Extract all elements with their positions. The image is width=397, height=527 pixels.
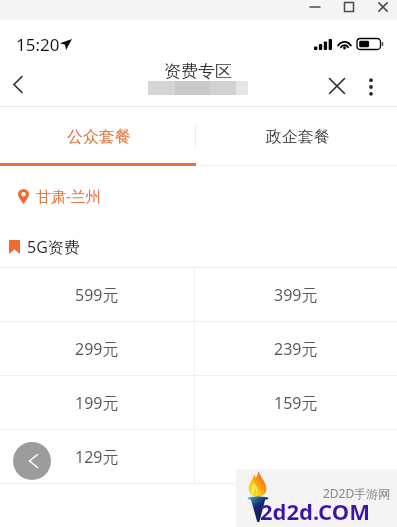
staticText: 5G资费 [27, 236, 80, 258]
button[interactable]: Back [13, 442, 51, 480]
button[interactable]: 公众套餐 [0, 107, 198, 166]
button[interactable] [195, 430, 397, 483]
staticText: 239元 [274, 338, 318, 360]
button[interactable]: Maximize [337, 0, 361, 20]
button[interactable]: 199元 [0, 376, 194, 429]
staticText: 199元 [75, 392, 119, 414]
button[interactable]: Close [320, 69, 354, 103]
button[interactable]: 159元 [195, 376, 397, 429]
staticText: 599元 [75, 284, 119, 306]
button[interactable]: 399元 [195, 268, 397, 321]
button[interactable]: 299元 [0, 322, 194, 375]
staticText: 政企套餐 [266, 127, 330, 147]
button[interactable]: Close window [371, 0, 395, 20]
staticText: 399元 [274, 284, 318, 306]
staticText: 甘肃-兰州 [36, 186, 101, 206]
staticText: 2D2D手游网 [323, 485, 391, 501]
staticText: 299元 [75, 338, 119, 360]
button[interactable]: More options [354, 70, 388, 104]
staticText: 公众套餐 [67, 127, 131, 147]
button[interactable]: 129元 [0, 430, 194, 483]
button[interactable]: 政企套餐 [198, 107, 397, 166]
button[interactable]: 599元 [0, 268, 194, 321]
button[interactable]: Back [2, 58, 36, 107]
staticText: 15:20 [16, 33, 60, 56]
button[interactable]: 甘肃-兰州 [18, 170, 397, 222]
button[interactable]: Minimize [303, 0, 327, 20]
staticText: 129元 [75, 446, 119, 468]
staticText: 资费专区 [164, 61, 232, 82]
staticText: 159元 [274, 392, 318, 414]
button[interactable]: 239元 [195, 322, 397, 375]
staticText: 2d2d.COM [260, 496, 370, 526]
